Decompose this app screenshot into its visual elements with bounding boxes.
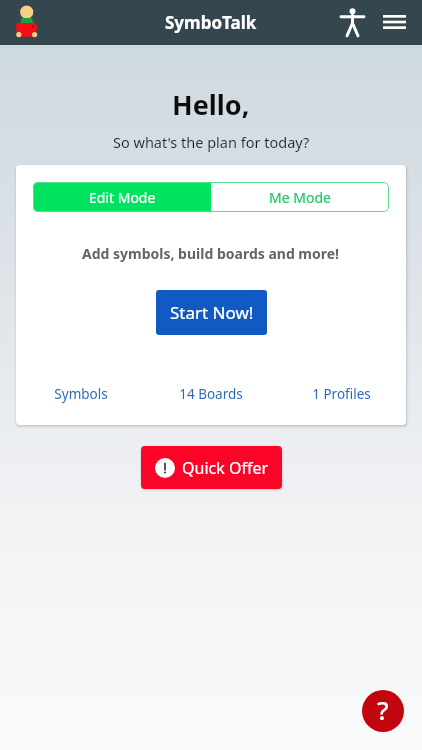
button[interactable]: Menu [376, 3, 412, 41]
button[interactable]: Start Now! [156, 290, 267, 335]
staticText: Add symbols, build boards and more! [82, 244, 340, 263]
staticText: Me Mode [269, 188, 331, 207]
staticText: Symbols [54, 385, 108, 403]
staticText: ? [377, 692, 389, 727]
staticText: Start Now! [170, 301, 254, 324]
button[interactable]: 1 Profiles [276, 384, 406, 404]
button[interactable]: Help [362, 690, 404, 732]
staticText: Hello, [172, 86, 250, 118]
button[interactable]: Accessibility [332, 3, 372, 41]
staticText: 14 Boards [179, 385, 243, 403]
button[interactable]: Edit Mode [33, 182, 211, 212]
button[interactable]: 14 Boards [146, 384, 276, 404]
button[interactable]: Quick Offer [141, 446, 282, 489]
staticText: 1 Profiles [312, 385, 371, 403]
staticText: Quick Offer [182, 457, 269, 479]
button[interactable]: Symbols [16, 384, 146, 404]
staticText: SymboTalk [165, 11, 257, 34]
staticText: Edit Mode [89, 188, 156, 207]
button[interactable]: Me Mode [211, 182, 389, 212]
staticText: So what's the plan for today? [113, 132, 310, 152]
